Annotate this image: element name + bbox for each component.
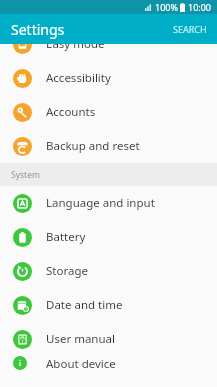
staticText: 10:00 xyxy=(188,1,212,13)
button[interactable]: Backup and reset xyxy=(0,129,217,163)
staticText: SEARCH xyxy=(173,23,207,35)
staticText: Battery xyxy=(46,229,86,245)
staticText: Language and input xyxy=(46,195,155,211)
staticText: Accounts xyxy=(46,104,96,120)
button[interactable]: Battery xyxy=(0,220,217,254)
staticText: About device xyxy=(46,356,116,370)
button[interactable]: About device xyxy=(0,356,217,370)
staticText: Accessibility xyxy=(46,70,111,86)
button[interactable]: SEARCH xyxy=(163,17,217,41)
button[interactable]: User manual xyxy=(0,322,217,356)
staticText: Settings xyxy=(11,20,65,39)
staticText: 100% xyxy=(155,1,178,13)
staticText: System xyxy=(11,169,40,181)
staticText: Storage xyxy=(46,263,88,279)
staticText: Easy mode xyxy=(46,44,105,52)
staticText: Backup and reset xyxy=(46,138,140,154)
button[interactable]: Accounts xyxy=(0,95,217,129)
button[interactable]: Accessibility xyxy=(0,61,217,95)
staticText: Date and time xyxy=(46,297,123,313)
staticText: User manual xyxy=(46,331,115,347)
button[interactable]: Storage xyxy=(0,254,217,288)
button[interactable]: Language and input xyxy=(0,186,217,220)
button[interactable]: Easy mode xyxy=(0,44,217,61)
button[interactable]: Date and time xyxy=(0,288,217,322)
